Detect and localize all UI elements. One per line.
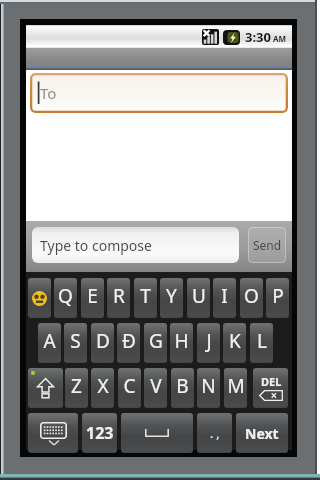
staticText: Type to compose [40, 236, 152, 255]
button[interactable]: Delete [253, 368, 288, 408]
staticText: X [97, 373, 109, 399]
button[interactable]: P [266, 278, 289, 318]
staticText: O [244, 283, 259, 309]
button[interactable]: M [224, 368, 247, 408]
button[interactable]: N [197, 368, 220, 408]
staticText: AM [273, 33, 287, 44]
staticText: Y [166, 283, 177, 309]
button[interactable]: Hide keyboard [28, 413, 78, 453]
button[interactable]: A [38, 323, 61, 363]
button[interactable]: K [223, 323, 246, 363]
staticText: R [113, 283, 125, 309]
staticText: G [149, 328, 163, 354]
button[interactable]: H [170, 323, 193, 363]
staticText: T [140, 283, 151, 309]
button[interactable]: 123 [82, 413, 117, 453]
button[interactable]: O [240, 278, 263, 318]
staticText: N [201, 373, 216, 399]
staticText: L [257, 328, 267, 354]
staticText: A [43, 328, 56, 354]
button[interactable]: X [91, 368, 114, 408]
staticText: M [227, 373, 245, 399]
button[interactable]: Z [65, 368, 88, 408]
button[interactable]: B [171, 368, 194, 408]
staticText: K [229, 328, 241, 354]
button[interactable]: V [144, 368, 167, 408]
button[interactable]: J [197, 323, 220, 363]
staticText: J [206, 328, 212, 354]
staticText: Q [58, 283, 73, 309]
staticText: DEL [261, 374, 282, 389]
staticText: I [221, 283, 228, 309]
staticText: U [192, 283, 206, 309]
button[interactable]: U [187, 278, 210, 318]
button[interactable]: C [118, 368, 141, 408]
button[interactable]: Send [248, 227, 286, 263]
staticText: 3:30 [245, 28, 271, 46]
button[interactable]: S [64, 323, 87, 363]
button[interactable]: Emoji [28, 278, 51, 318]
button[interactable]: I [213, 278, 236, 318]
button[interactable]: G [144, 323, 167, 363]
staticText: D [96, 328, 110, 354]
button[interactable]: L [250, 323, 273, 363]
button[interactable]: D [91, 323, 114, 363]
button[interactable]: Type to compose [32, 227, 239, 263]
button[interactable]: E [81, 278, 104, 318]
staticText: 123 [86, 422, 114, 444]
button[interactable]: Đ [117, 323, 140, 363]
staticText: Z [71, 373, 82, 399]
button[interactable]: Shift [28, 368, 63, 408]
staticText: H [174, 328, 189, 354]
button[interactable]: Q [54, 278, 77, 318]
staticText: To [40, 83, 57, 103]
staticText: B [176, 373, 189, 399]
staticText: Send [253, 237, 282, 253]
staticText: S [70, 328, 81, 354]
button[interactable]: Y [160, 278, 183, 318]
staticText: . , [210, 425, 220, 441]
button[interactable]: Space [121, 413, 193, 453]
button[interactable]: R [107, 278, 130, 318]
button[interactable]: Next [236, 413, 288, 453]
button[interactable]: T [134, 278, 157, 318]
button[interactable]: . , [197, 413, 232, 453]
staticText: E [87, 283, 98, 309]
staticText: Đ [122, 328, 136, 354]
staticText: P [272, 283, 284, 309]
staticText: V [150, 373, 162, 399]
button[interactable]: To [30, 73, 288, 113]
staticText: C [123, 373, 136, 399]
staticText: Next [245, 424, 279, 443]
